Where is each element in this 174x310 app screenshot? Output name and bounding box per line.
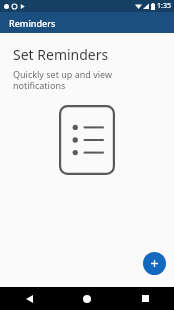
button[interactable]: Recent apps: [116, 287, 174, 310]
staticText: 1:35: [157, 1, 171, 11]
button[interactable]: Back: [0, 287, 58, 310]
staticText: Set Reminders: [13, 45, 109, 64]
button[interactable]: Home: [58, 287, 116, 310]
staticText: Quickly set up and view notifications: [13, 68, 113, 92]
staticText: Reminders: [9, 17, 56, 29]
button[interactable]: Add reminder: [143, 252, 166, 275]
